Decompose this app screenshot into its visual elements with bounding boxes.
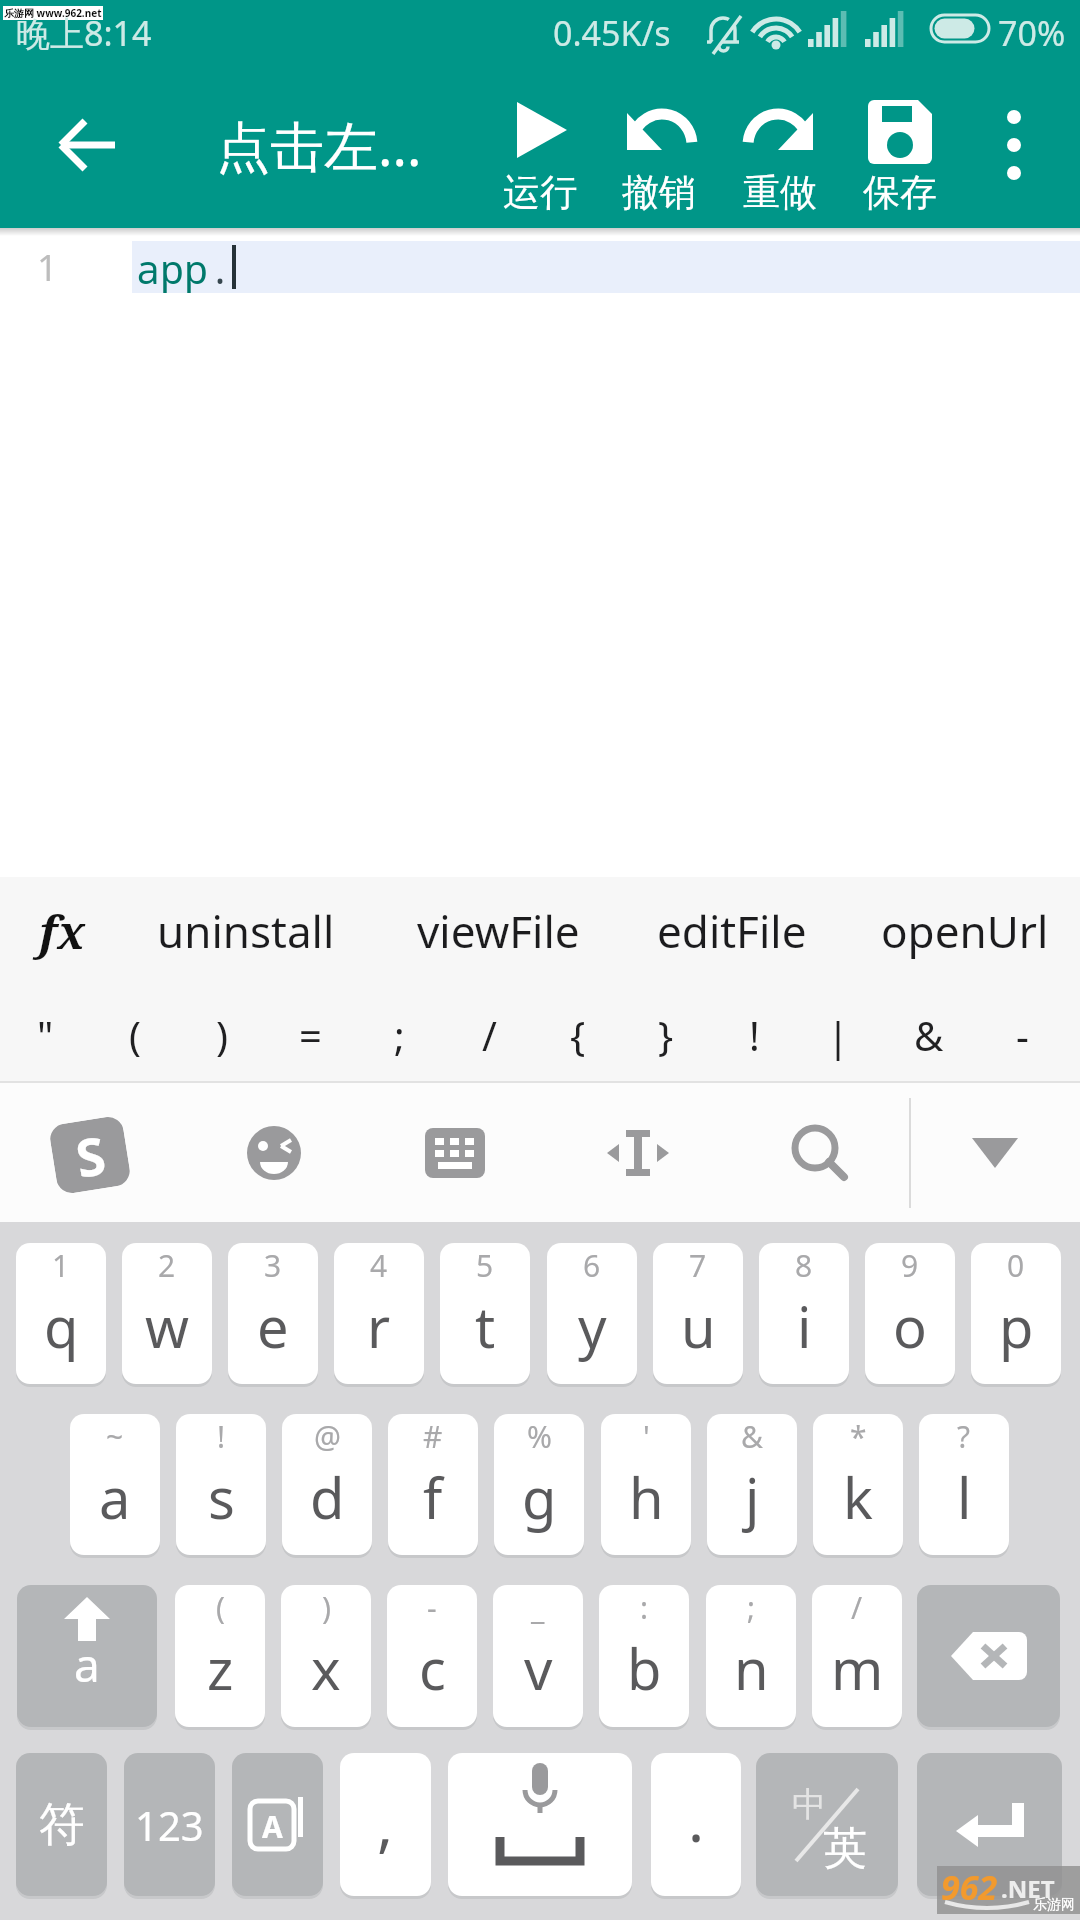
button[interactable] bbox=[610, 92, 710, 218]
button[interactable]: 2 bbox=[122, 1243, 212, 1384]
button[interactable]: * bbox=[813, 1414, 903, 1555]
button[interactable]: } bbox=[624, 1002, 708, 1068]
staticText: app bbox=[136, 241, 208, 293]
button[interactable]: . bbox=[651, 1753, 741, 1896]
button[interactable]: a bbox=[17, 1585, 157, 1727]
button[interactable] bbox=[730, 92, 830, 218]
button[interactable]: ( bbox=[93, 1002, 177, 1068]
staticText: 6 bbox=[583, 1245, 601, 1286]
button[interactable]: 0 bbox=[971, 1243, 1061, 1384]
button[interactable]: ( bbox=[175, 1585, 265, 1727]
staticText: ; bbox=[747, 1587, 756, 1628]
button[interactable]: # bbox=[388, 1414, 478, 1555]
button[interactable]: 4 bbox=[334, 1243, 424, 1384]
staticText: / bbox=[851, 1587, 863, 1628]
button[interactable] bbox=[782, 1121, 858, 1185]
staticText: a bbox=[99, 1459, 131, 1535]
button[interactable]: & bbox=[887, 1002, 971, 1068]
button[interactable]: ' bbox=[601, 1414, 691, 1555]
button[interactable]: / bbox=[812, 1585, 902, 1727]
button[interactable]: / bbox=[447, 1002, 531, 1068]
button[interactable] bbox=[490, 92, 590, 218]
staticText: editFile bbox=[657, 901, 807, 961]
button[interactable]: 5 bbox=[440, 1243, 530, 1384]
staticText: uninstall bbox=[157, 901, 335, 961]
button[interactable]: , bbox=[340, 1753, 431, 1896]
staticText: p bbox=[999, 1288, 1034, 1364]
staticText: 4 bbox=[370, 1245, 388, 1286]
button[interactable]: " bbox=[3, 1002, 87, 1068]
button[interactable]: % bbox=[494, 1414, 584, 1555]
button[interactable]: 中 bbox=[756, 1753, 898, 1896]
button[interactable]: S bbox=[48, 1115, 132, 1195]
button[interactable] bbox=[850, 92, 950, 218]
button[interactable] bbox=[917, 1753, 1062, 1896]
staticText: q bbox=[44, 1288, 79, 1364]
staticText: a bbox=[74, 1633, 100, 1696]
button[interactable]: ; bbox=[706, 1585, 796, 1727]
button[interactable] bbox=[40, 98, 134, 192]
staticText: . bbox=[208, 241, 232, 293]
staticText: 保存 bbox=[863, 169, 937, 216]
button[interactable]: _ bbox=[493, 1585, 583, 1727]
staticText: w bbox=[145, 1288, 190, 1364]
button[interactable]: uninstall bbox=[116, 896, 376, 966]
staticText: viewFile bbox=[417, 901, 580, 961]
staticText: 0.45K/s bbox=[553, 10, 671, 56]
staticText: k bbox=[843, 1459, 873, 1535]
staticText: t bbox=[475, 1288, 496, 1364]
button[interactable]: ; bbox=[357, 1002, 441, 1068]
staticText: ! bbox=[217, 1416, 226, 1457]
staticText: * bbox=[850, 1416, 867, 1457]
staticText: 重做 bbox=[743, 169, 817, 216]
button[interactable]: ~ bbox=[70, 1414, 160, 1555]
staticText: ( bbox=[216, 1587, 225, 1628]
button[interactable]: ) bbox=[281, 1585, 371, 1727]
button[interactable]: ? bbox=[919, 1414, 1009, 1555]
staticText: fx bbox=[39, 900, 86, 963]
button[interactable]: - bbox=[980, 1002, 1064, 1068]
staticText: 1 bbox=[37, 243, 58, 292]
button[interactable]: | bbox=[796, 1002, 880, 1068]
staticText: / bbox=[482, 1008, 497, 1062]
button[interactable] bbox=[966, 98, 1062, 192]
button[interactable]: @ bbox=[282, 1414, 372, 1555]
staticText: 2 bbox=[158, 1245, 176, 1286]
button[interactable] bbox=[417, 1121, 493, 1185]
staticText: 5 bbox=[476, 1245, 494, 1286]
button[interactable]: 符 bbox=[16, 1753, 107, 1896]
button[interactable]: openUrl bbox=[835, 896, 1080, 966]
button[interactable] bbox=[448, 1753, 632, 1896]
staticText: 7 bbox=[689, 1245, 707, 1286]
button[interactable]: fx bbox=[0, 896, 192, 966]
staticText: c bbox=[419, 1630, 446, 1706]
button[interactable]: & bbox=[707, 1414, 797, 1555]
button[interactable]: 7 bbox=[653, 1243, 743, 1384]
button[interactable]: ! bbox=[176, 1414, 266, 1555]
staticText: 英 bbox=[823, 1821, 867, 1876]
button[interactable]: ) bbox=[180, 1002, 264, 1068]
staticText: ( bbox=[129, 1008, 141, 1062]
button[interactable]: 6 bbox=[547, 1243, 637, 1384]
button[interactable] bbox=[240, 1119, 308, 1187]
button[interactable]: 123 bbox=[124, 1753, 215, 1896]
button[interactable]: : bbox=[599, 1585, 689, 1727]
button[interactable]: ! bbox=[712, 1002, 796, 1068]
button[interactable]: A bbox=[232, 1753, 323, 1896]
button[interactable] bbox=[917, 1585, 1060, 1727]
button[interactable] bbox=[600, 1121, 676, 1185]
button[interactable]: = bbox=[268, 1002, 352, 1068]
staticText: 中 bbox=[792, 1783, 826, 1826]
button[interactable]: - bbox=[387, 1585, 477, 1727]
staticText: 3 bbox=[264, 1245, 282, 1286]
button[interactable]: 1 bbox=[16, 1243, 106, 1384]
button[interactable]: viewFile bbox=[368, 896, 628, 966]
button[interactable] bbox=[955, 1121, 1035, 1185]
staticText: , bbox=[377, 1782, 394, 1864]
staticText: b bbox=[627, 1630, 662, 1706]
button[interactable]: 8 bbox=[759, 1243, 849, 1384]
button[interactable]: 3 bbox=[228, 1243, 318, 1384]
button[interactable]: { bbox=[536, 1002, 620, 1068]
button[interactable]: 9 bbox=[865, 1243, 955, 1384]
button[interactable]: editFile bbox=[602, 896, 862, 966]
